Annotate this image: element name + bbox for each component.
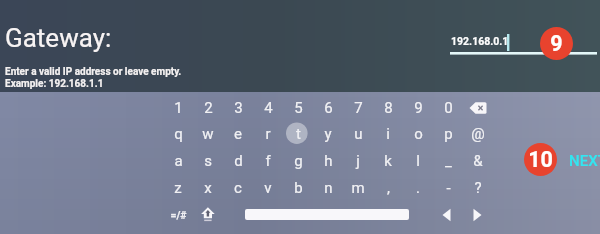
button[interactable]: 5 (284, 95, 312, 121)
staticText: Example: 192.168.1.1 (5, 78, 104, 90)
button[interactable]: Shift (194, 202, 222, 228)
button[interactable]: NEXT (569, 152, 600, 170)
staticText: z (174, 179, 182, 197)
button[interactable]: b (284, 175, 312, 201)
button[interactable]: j (344, 148, 372, 174)
button[interactable]: , (374, 175, 402, 201)
staticText: 8 (384, 99, 393, 117)
staticText: NEXT (569, 152, 600, 170)
button[interactable]: t (284, 121, 312, 147)
staticText: l (416, 152, 420, 170)
button[interactable]: _ (434, 148, 462, 174)
button[interactable]: @ (464, 121, 492, 147)
staticText: h (324, 152, 333, 170)
staticText: 4 (264, 99, 273, 117)
button[interactable]: ? (464, 175, 492, 201)
staticText: g (294, 152, 303, 170)
button[interactable]: Move right (464, 202, 492, 228)
staticText: o (414, 125, 423, 143)
staticText: Gateway: (5, 23, 112, 53)
button[interactable]: f (254, 148, 282, 174)
staticText: 10 (528, 147, 553, 172)
button[interactable]: 0 (434, 95, 462, 121)
button[interactable]: . (404, 175, 432, 201)
button[interactable]: Backspace (464, 95, 492, 121)
button[interactable]: Gateway: (5, 23, 112, 53)
staticText: 3 (234, 99, 243, 117)
staticText: . (416, 179, 420, 197)
staticText: m (351, 179, 365, 197)
staticText: w (202, 125, 214, 143)
staticText: ? (474, 179, 482, 197)
staticText: _ (445, 152, 452, 170)
button[interactable]: d (224, 148, 252, 174)
staticText: q (174, 125, 183, 143)
button[interactable]: 4 (254, 95, 282, 121)
staticText: 6 (324, 99, 333, 117)
staticText: 7 (354, 99, 363, 117)
staticText: t (296, 125, 301, 143)
button[interactable]: p (434, 121, 462, 147)
button[interactable]: 7 (344, 95, 372, 121)
staticText: , (387, 179, 390, 197)
staticText: - (446, 179, 451, 197)
staticText: d (234, 152, 243, 170)
staticText: 1 (174, 99, 183, 117)
staticText: 0 (444, 99, 453, 117)
button[interactable]: c (224, 175, 252, 201)
button[interactable]: a (164, 148, 192, 174)
button[interactable]: x (194, 175, 222, 201)
staticText: k (384, 152, 392, 170)
button[interactable]: l (404, 148, 432, 174)
button[interactable]: y (314, 121, 342, 147)
button[interactable]: u (344, 121, 372, 147)
staticText: a (174, 152, 183, 170)
button[interactable]: 3 (224, 95, 252, 121)
staticText: 192.168.0.1 (451, 35, 509, 47)
button[interactable]: 1 (164, 95, 192, 121)
staticText: Enter a valid IP address or leave empty. (5, 66, 182, 78)
staticText: 5 (294, 99, 303, 117)
button[interactable]: n (314, 175, 342, 201)
staticText: & (473, 152, 483, 170)
button[interactable]: 8 (374, 95, 402, 121)
button[interactable]: 6 (314, 95, 342, 121)
button[interactable]: w (194, 121, 222, 147)
button[interactable]: 192.168.0.1 (450, 32, 597, 58)
button[interactable]: q (164, 121, 192, 147)
button[interactable]: i (374, 121, 402, 147)
staticText: y (324, 125, 332, 143)
button[interactable]: e (224, 121, 252, 147)
staticText: j (356, 152, 360, 170)
staticText: r (265, 125, 271, 143)
button[interactable]: m (344, 175, 372, 201)
staticText: 9 (414, 99, 423, 117)
button[interactable]: r (254, 121, 282, 147)
staticText: c (234, 179, 242, 197)
staticText: i (386, 125, 390, 143)
staticText: 9 (550, 31, 563, 56)
button[interactable]: h (314, 148, 342, 174)
button[interactable]: k (374, 148, 402, 174)
button[interactable]: g (284, 148, 312, 174)
button[interactable]: s (194, 148, 222, 174)
button[interactable]: - (434, 175, 462, 201)
staticText: b (294, 179, 303, 197)
button[interactable]: Space (245, 209, 409, 220)
staticText: n (324, 179, 333, 197)
staticText: e (234, 125, 242, 143)
button[interactable]: v (254, 175, 282, 201)
staticText: @ (471, 125, 485, 143)
button[interactable]: z (164, 175, 192, 201)
button[interactable]: Move left (434, 202, 462, 228)
staticText: p (444, 125, 453, 143)
staticText: v (264, 179, 272, 197)
button[interactable]: =/# (164, 202, 192, 228)
button[interactable]: & (464, 148, 492, 174)
staticText: u (354, 125, 363, 143)
staticText: x (204, 179, 212, 197)
button[interactable]: 9 (404, 95, 432, 121)
staticText: s (204, 152, 212, 170)
button[interactable]: 2 (194, 95, 222, 121)
button[interactable]: o (404, 121, 432, 147)
